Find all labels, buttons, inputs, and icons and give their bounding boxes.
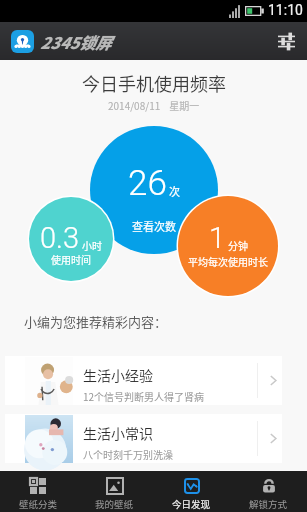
button[interactable]: 生活小常识: [5, 414, 282, 463]
staticText: 我的壁纸: [95, 497, 134, 511]
staticText: 小编为您推荐精彩内容：: [24, 312, 168, 331]
staticText: 次: [169, 183, 180, 199]
button[interactable]: 生活小经验: [5, 356, 282, 405]
staticText: 分钟: [228, 238, 248, 252]
staticText: 今日手机使用频率: [82, 70, 226, 96]
staticText: 查看次数: [132, 218, 176, 234]
staticText: 生活小常识: [83, 423, 153, 443]
staticText: 1: [209, 221, 226, 255]
staticText: 11:10: [268, 2, 303, 18]
staticText: 壁纸分类: [19, 497, 58, 511]
staticText: 小时: [82, 238, 102, 252]
button[interactable]: 解锁方式: [230, 471, 307, 512]
staticText: 0.3: [40, 221, 80, 255]
button[interactable]: 壁纸分类: [0, 471, 76, 512]
staticText: 八个时刻千万别洗澡: [83, 447, 173, 461]
staticText: 生活小经验: [83, 365, 153, 385]
staticText: 26: [128, 163, 167, 204]
staticText: 平均每次使用时长: [188, 254, 268, 268]
staticText: 解锁方式: [249, 497, 288, 511]
button[interactable]: 我的壁纸: [76, 471, 153, 512]
staticText: 2345锁屏: [40, 30, 111, 53]
staticText: 12个信号判断男人得了肾病: [83, 389, 205, 403]
staticText: 今日发现: [172, 497, 211, 511]
button[interactable]: 今日发现: [153, 471, 230, 512]
staticText: 2014/08/11 星期一: [108, 98, 200, 112]
button[interactable]: Settings: [273, 28, 299, 54]
staticText: 使用时间: [51, 252, 91, 266]
